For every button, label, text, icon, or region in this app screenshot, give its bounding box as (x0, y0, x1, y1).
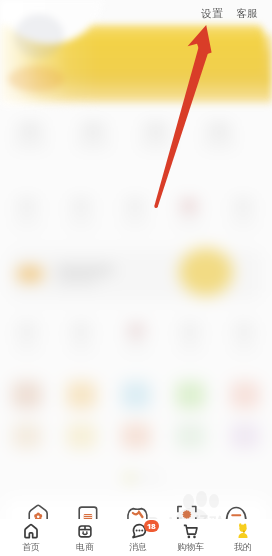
button[interactable]: 18 (117, 521, 159, 555)
staticText: 电商 (76, 541, 94, 552)
button[interactable]: 首页 (10, 521, 52, 555)
button[interactable]: 设置 (199, 4, 225, 23)
staticText: 18 (147, 521, 156, 531)
staticText: Baidu经验 (148, 512, 226, 534)
staticText: 客服 (236, 7, 258, 20)
staticText: 消息 (129, 541, 147, 552)
button[interactable]: 我的 (222, 521, 264, 555)
staticText: 设置 (201, 7, 223, 20)
staticText: 购物车 (177, 541, 204, 552)
button[interactable]: 客服 (234, 4, 260, 23)
staticText: 首页 (22, 541, 40, 552)
staticText: 我的 (234, 541, 252, 552)
button[interactable]: 电商 (64, 521, 106, 555)
button[interactable]: 购物车 (169, 521, 211, 555)
